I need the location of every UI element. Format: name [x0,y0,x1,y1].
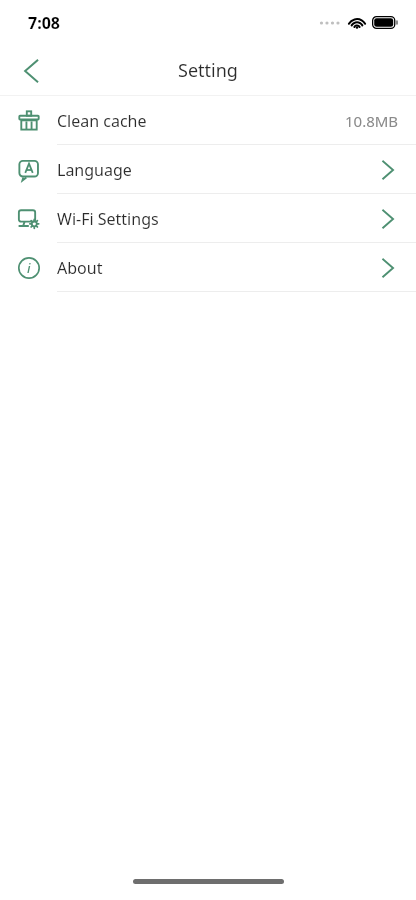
staticText: Language [57,159,132,181]
button[interactable]: Language [0,145,416,194]
staticText: Wi-Fi Settings [57,208,159,230]
button[interactable]: Wi-Fi Settings [0,194,416,243]
staticText: 7:08 [28,12,60,34]
button[interactable]: Clean cache [0,96,416,145]
staticText: i [27,259,31,277]
staticText: 10.8MB [345,111,399,131]
button[interactable]: i [0,243,416,292]
staticText: About [57,257,103,279]
button[interactable]: Back [0,45,62,96]
staticText: Clean cache [57,110,147,132]
staticText: Setting [178,58,238,83]
